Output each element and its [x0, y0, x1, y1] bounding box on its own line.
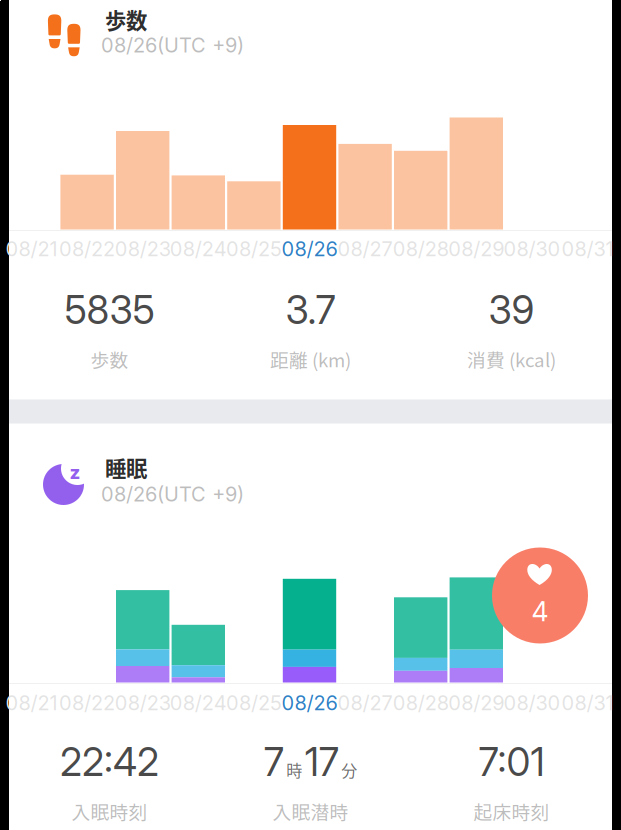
staticText: 08/27 — [338, 691, 393, 715]
staticText: 5835 — [64, 287, 154, 333]
staticText: 入眠時刻 — [71, 797, 147, 824]
staticText: 睡眠 — [105, 452, 147, 483]
staticText: 08/21 — [5, 691, 57, 715]
staticText: 08/23 — [115, 691, 171, 715]
staticText: 起床時刻 — [473, 797, 549, 824]
staticText: 7:01 — [478, 739, 544, 785]
staticText: 08/30 — [503, 691, 560, 715]
staticText: 距離 (km) — [270, 345, 351, 372]
staticText: 08/26 — [281, 237, 337, 261]
staticText: 08/22 — [59, 691, 115, 715]
staticText: 時 — [286, 758, 302, 781]
staticText: 08/30 — [503, 237, 560, 261]
staticText: 08/22 — [59, 237, 115, 261]
staticText: 08/24 — [170, 691, 227, 715]
staticText: 08/21 — [5, 237, 57, 261]
staticText: 22:42 — [60, 739, 159, 785]
staticText: 歩数 — [105, 4, 147, 35]
staticText: 08/25 — [226, 237, 282, 261]
staticText: 08/26 — [281, 691, 337, 715]
staticText: 17 — [305, 739, 339, 785]
staticText: 39 — [488, 287, 534, 333]
staticText: 08/28 — [393, 691, 449, 715]
staticText: z — [69, 461, 80, 484]
staticText: 分 — [341, 758, 357, 781]
staticText: 08/29 — [448, 237, 504, 261]
staticText: 08/28 — [393, 237, 449, 261]
staticText: 08/27 — [338, 237, 393, 261]
staticText: 08/23 — [115, 237, 171, 261]
staticText: 08/29 — [448, 691, 504, 715]
staticText: 08/25 — [226, 691, 282, 715]
staticText: 08/26(UTC +9) — [101, 482, 244, 506]
staticText: 4 — [531, 595, 548, 628]
staticText: 消費 (kcal) — [467, 345, 556, 372]
button[interactable]: Heart rate 4 — [492, 547, 588, 643]
staticText: 08/31 — [561, 237, 613, 261]
staticText: 3.7 — [285, 287, 335, 333]
staticText: 08/26(UTC +9) — [101, 33, 244, 57]
staticText: 入眠潜時 — [272, 797, 348, 824]
staticText: 7 — [264, 739, 284, 785]
staticText: 08/24 — [170, 237, 227, 261]
staticText: 08/31 — [561, 691, 613, 715]
staticText: 歩数 — [90, 345, 128, 372]
